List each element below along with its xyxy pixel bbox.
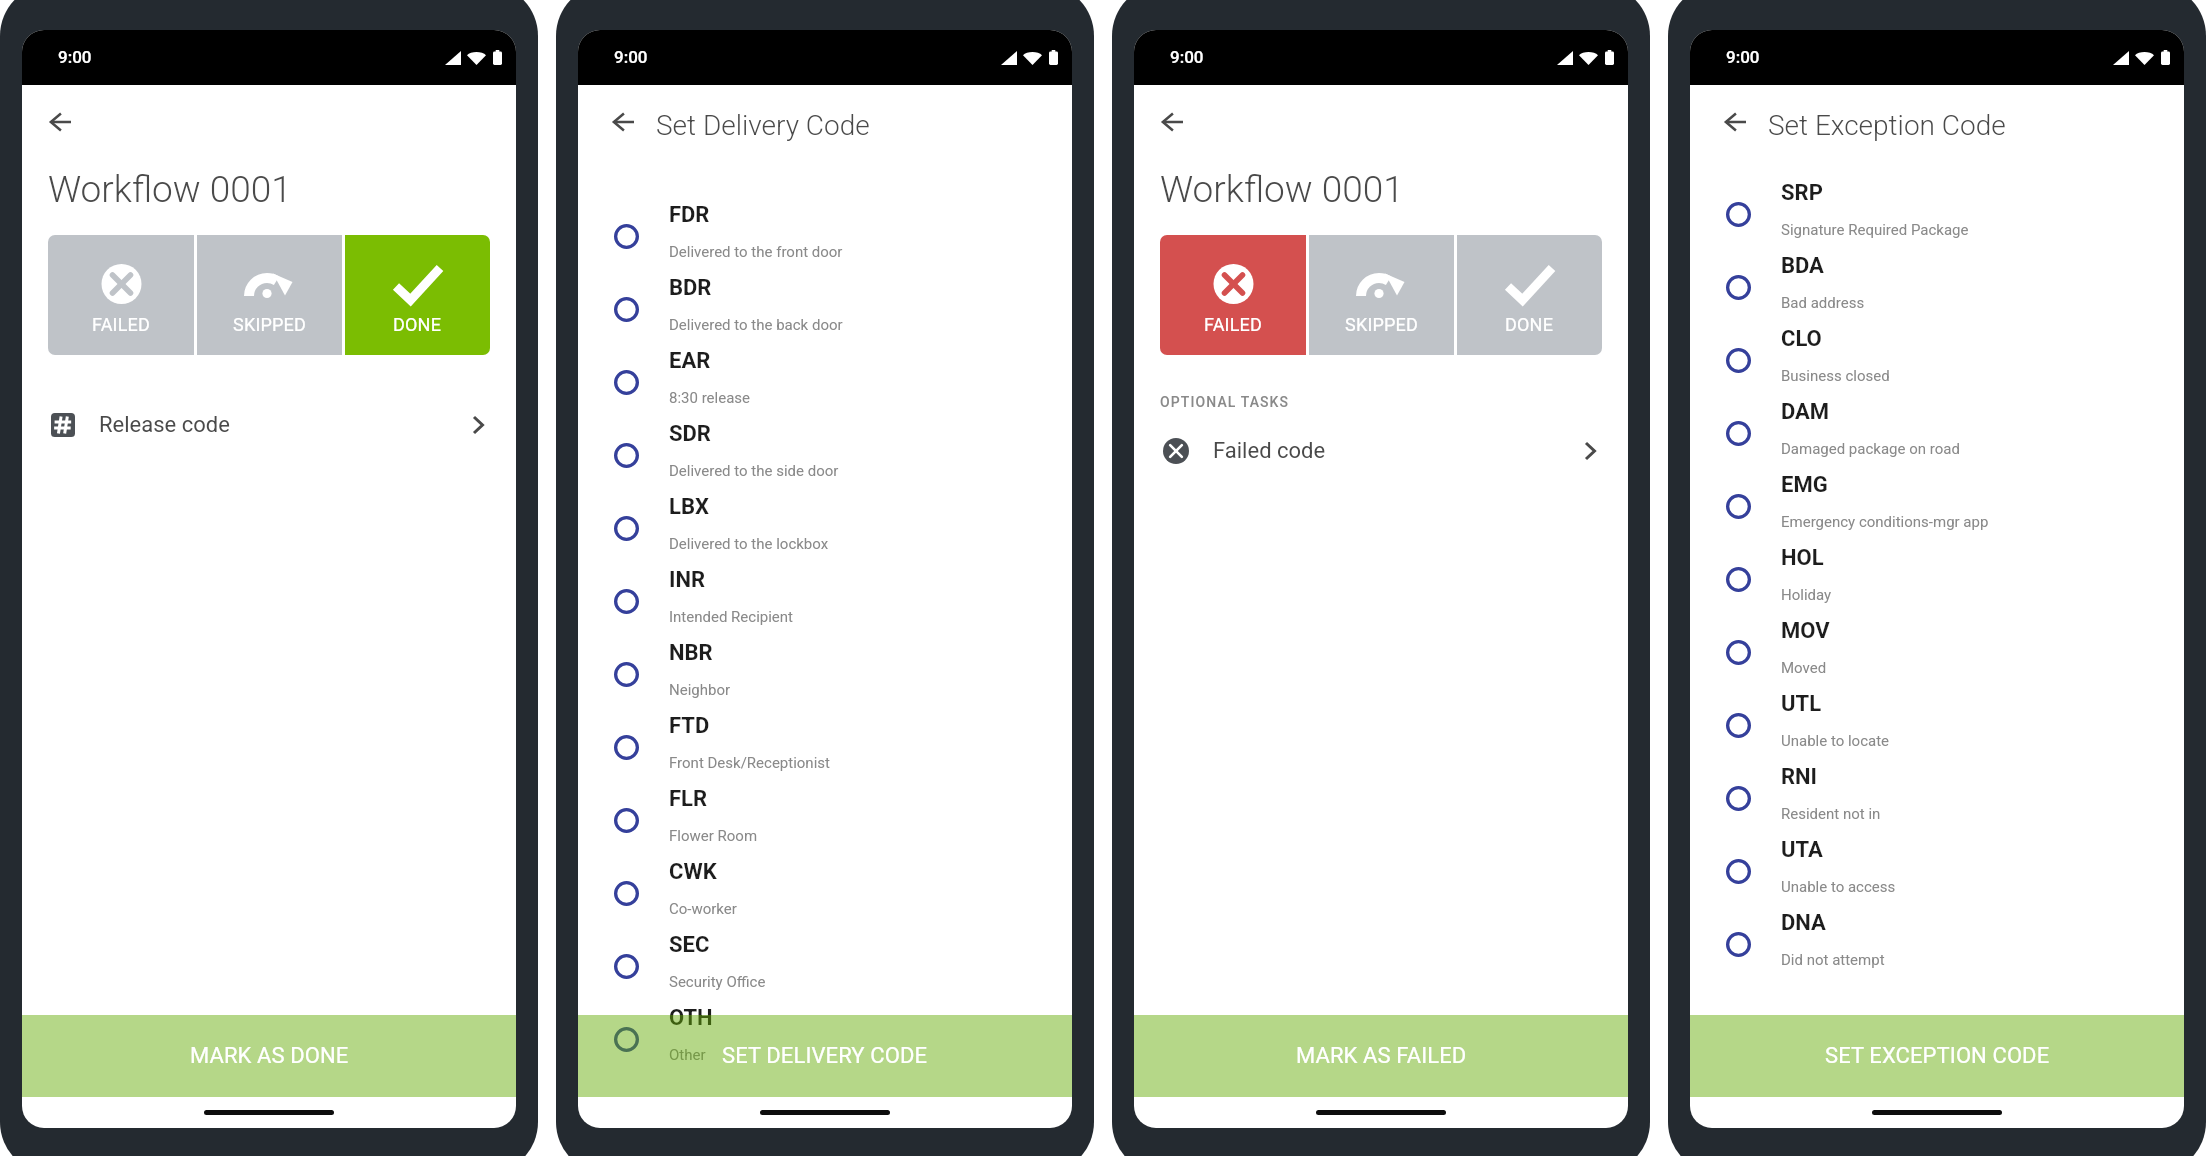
staticText: Business closed bbox=[1781, 367, 1890, 385]
staticText: Moved bbox=[1781, 659, 1827, 677]
staticText: HOL bbox=[1781, 545, 1824, 571]
button[interactable]: CWK bbox=[578, 857, 1072, 930]
button[interactable]: RNI bbox=[1690, 762, 2184, 835]
button[interactable]: SEC bbox=[578, 930, 1072, 1003]
staticText: FDR bbox=[669, 202, 710, 228]
staticText: MARK AS DONE bbox=[190, 1043, 349, 1069]
staticText: Delivered to the front door bbox=[669, 243, 843, 261]
staticText: LBX bbox=[669, 494, 709, 520]
button[interactable]: FAILED bbox=[48, 235, 194, 355]
button[interactable]: MOV bbox=[1690, 616, 2184, 689]
button[interactable]: Release code bbox=[22, 398, 516, 452]
button[interactable]: SRP bbox=[1690, 178, 2184, 251]
staticText: Failed code bbox=[1213, 438, 1326, 464]
staticText: Neighbor bbox=[669, 681, 731, 699]
button[interactable]: SKIPPED bbox=[197, 235, 342, 355]
button[interactable]: Back bbox=[37, 99, 83, 145]
staticText: Set Exception Code bbox=[1768, 109, 2006, 142]
staticText: CWK bbox=[669, 859, 717, 885]
button[interactable]: Failed code bbox=[1134, 424, 1628, 478]
button[interactable]: INR bbox=[578, 565, 1072, 638]
staticText: Workflow 0001 bbox=[1160, 168, 1404, 211]
staticText: MOV bbox=[1781, 618, 1830, 644]
button[interactable]: DNA bbox=[1690, 908, 2184, 981]
button[interactable]: Back bbox=[600, 99, 646, 145]
staticText: SKIPPED bbox=[233, 314, 307, 335]
button[interactable]: BDA bbox=[1690, 251, 2184, 324]
staticText: FAILED bbox=[92, 314, 151, 335]
button[interactable]: MARK AS FAILED bbox=[1134, 1015, 1628, 1097]
staticText: Workflow 0001 bbox=[48, 168, 292, 211]
button[interactable]: EMG bbox=[1690, 470, 2184, 543]
button[interactable]: SET EXCEPTION CODE bbox=[1690, 1015, 2184, 1097]
staticText: 9:00 bbox=[614, 47, 648, 67]
staticText: CLO bbox=[1781, 326, 1822, 352]
button[interactable]: FAILED bbox=[1160, 235, 1306, 355]
staticText: Damaged package on road bbox=[1781, 440, 1960, 458]
staticText: EMG bbox=[1781, 472, 1828, 498]
staticText: 8:30 release bbox=[669, 389, 750, 407]
staticText: Other bbox=[669, 1046, 706, 1064]
staticText: OTH bbox=[669, 1005, 713, 1031]
button[interactable]: CLO bbox=[1690, 324, 2184, 397]
button[interactable]: UTL bbox=[1690, 689, 2184, 762]
staticText: BDR bbox=[669, 275, 712, 301]
staticText: EAR bbox=[669, 348, 711, 374]
button[interactable]: Back bbox=[1712, 99, 1758, 145]
staticText: UTA bbox=[1781, 837, 1823, 863]
staticText: Signature Required Package bbox=[1781, 221, 1969, 239]
button[interactable]: DONE bbox=[1457, 235, 1602, 355]
staticText: Holiday bbox=[1781, 586, 1832, 604]
staticText: Did not attempt bbox=[1781, 951, 1885, 969]
button[interactable]: FDR bbox=[578, 200, 1072, 273]
button[interactable]: OTH bbox=[578, 1003, 1072, 1076]
staticText: 9:00 bbox=[1170, 47, 1204, 67]
staticText: Flower Room bbox=[669, 827, 758, 845]
staticText: BDA bbox=[1781, 253, 1824, 279]
staticText: OPTIONAL TASKS bbox=[1160, 394, 1290, 410]
button[interactable]: SET DELIVERY CODE bbox=[578, 1015, 1072, 1097]
staticText: Resident not in bbox=[1781, 805, 1881, 823]
staticText: Delivered to the back door bbox=[669, 316, 843, 334]
staticText: SRP bbox=[1781, 180, 1823, 206]
staticText: DONE bbox=[1505, 314, 1554, 335]
staticText: SEC bbox=[669, 932, 710, 958]
staticText: SET DELIVERY CODE bbox=[722, 1043, 928, 1069]
button[interactable]: UTA bbox=[1690, 835, 2184, 908]
button[interactable]: Back bbox=[1149, 99, 1195, 145]
staticText: Unable to locate bbox=[1781, 732, 1890, 750]
staticText: FAILED bbox=[1204, 314, 1263, 335]
staticText: Security Office bbox=[669, 973, 766, 991]
staticText: UTL bbox=[1781, 691, 1822, 717]
staticText: RNI bbox=[1781, 764, 1818, 790]
staticText: DONE bbox=[393, 314, 442, 335]
staticText: 9:00 bbox=[58, 47, 92, 67]
staticText: SDR bbox=[669, 421, 711, 447]
staticText: Unable to access bbox=[1781, 878, 1896, 896]
button[interactable]: FTD bbox=[578, 711, 1072, 784]
staticText: FLR bbox=[669, 786, 708, 812]
staticText: Emergency conditions-mgr app bbox=[1781, 513, 1989, 531]
button[interactable]: EAR bbox=[578, 346, 1072, 419]
button[interactable]: MARK AS DONE bbox=[22, 1015, 516, 1097]
staticText: Set Delivery Code bbox=[656, 109, 870, 142]
staticText: DAM bbox=[1781, 399, 1830, 425]
staticText: FTD bbox=[669, 713, 710, 739]
staticText: SKIPPED bbox=[1345, 314, 1419, 335]
button[interactable]: NBR bbox=[578, 638, 1072, 711]
staticText: SET EXCEPTION CODE bbox=[1825, 1043, 2050, 1069]
staticText: Intended Recipient bbox=[669, 608, 794, 626]
button[interactable]: DAM bbox=[1690, 397, 2184, 470]
staticText: Delivered to the lockbox bbox=[669, 535, 829, 553]
staticText: Front Desk/Receptionist bbox=[669, 754, 830, 772]
button[interactable]: SDR bbox=[578, 419, 1072, 492]
staticText: INR bbox=[669, 567, 706, 593]
button[interactable]: DONE bbox=[345, 235, 490, 355]
staticText: Release code bbox=[99, 412, 230, 438]
button[interactable]: LBX bbox=[578, 492, 1072, 565]
staticText: Bad address bbox=[1781, 294, 1865, 312]
button[interactable]: HOL bbox=[1690, 543, 2184, 616]
button[interactable]: FLR bbox=[578, 784, 1072, 857]
button[interactable]: SKIPPED bbox=[1309, 235, 1454, 355]
button[interactable]: BDR bbox=[578, 273, 1072, 346]
